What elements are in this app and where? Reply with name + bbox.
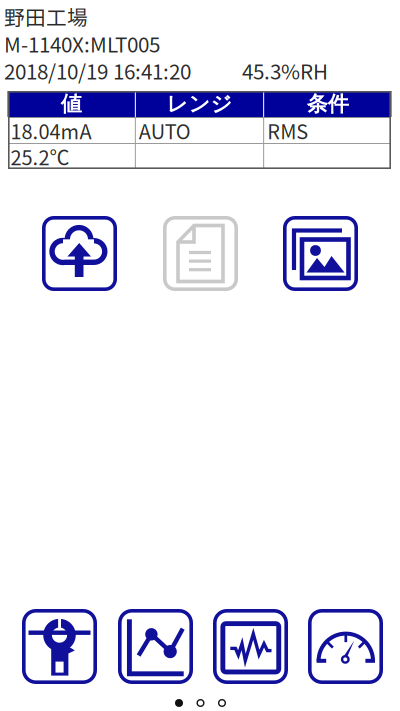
button[interactable]: Upload	[42, 216, 117, 291]
staticText: 2018/10/19 16:41:20	[4, 55, 191, 85]
staticText: 値	[61, 91, 82, 117]
staticText: レンジ	[166, 91, 232, 117]
staticText: 25.2℃	[10, 142, 69, 171]
staticText: 野田工場	[4, 1, 88, 31]
staticText: M-1140X:MLT005	[4, 28, 160, 58]
button[interactable]: Trend	[118, 609, 193, 684]
button[interactable]: Gauge	[308, 609, 383, 684]
staticText: 45.3%RH	[242, 55, 328, 85]
button[interactable]: Measure	[22, 609, 97, 684]
button[interactable]: Report	[163, 216, 238, 291]
staticText: AUTO	[139, 116, 191, 145]
staticText: 18.04mA	[10, 116, 91, 145]
button[interactable]: Waveform	[213, 609, 288, 684]
staticText: 条件	[307, 91, 349, 117]
staticText: RMS	[267, 116, 308, 145]
button[interactable]: Photos	[283, 216, 358, 291]
